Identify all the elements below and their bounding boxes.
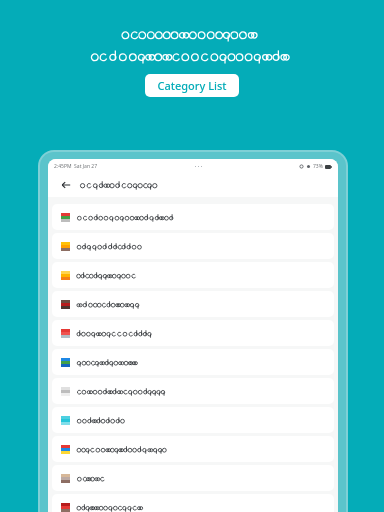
button[interactable] (52, 378, 334, 404)
button[interactable] (52, 262, 334, 288)
staticText: 2:45PM Sat Jan 27 (54, 163, 98, 170)
button[interactable] (52, 204, 334, 230)
button[interactable] (52, 349, 334, 375)
staticText: 73% (313, 163, 323, 170)
button[interactable]: Category List (145, 74, 239, 97)
button[interactable] (52, 291, 334, 317)
button[interactable] (52, 407, 334, 433)
button[interactable] (52, 233, 334, 259)
button[interactable] (52, 465, 334, 491)
button[interactable] (52, 494, 334, 512)
button[interactable] (52, 436, 334, 462)
button[interactable]: Back (58, 177, 74, 193)
staticText: Category List (157, 78, 227, 93)
button[interactable] (52, 320, 334, 346)
